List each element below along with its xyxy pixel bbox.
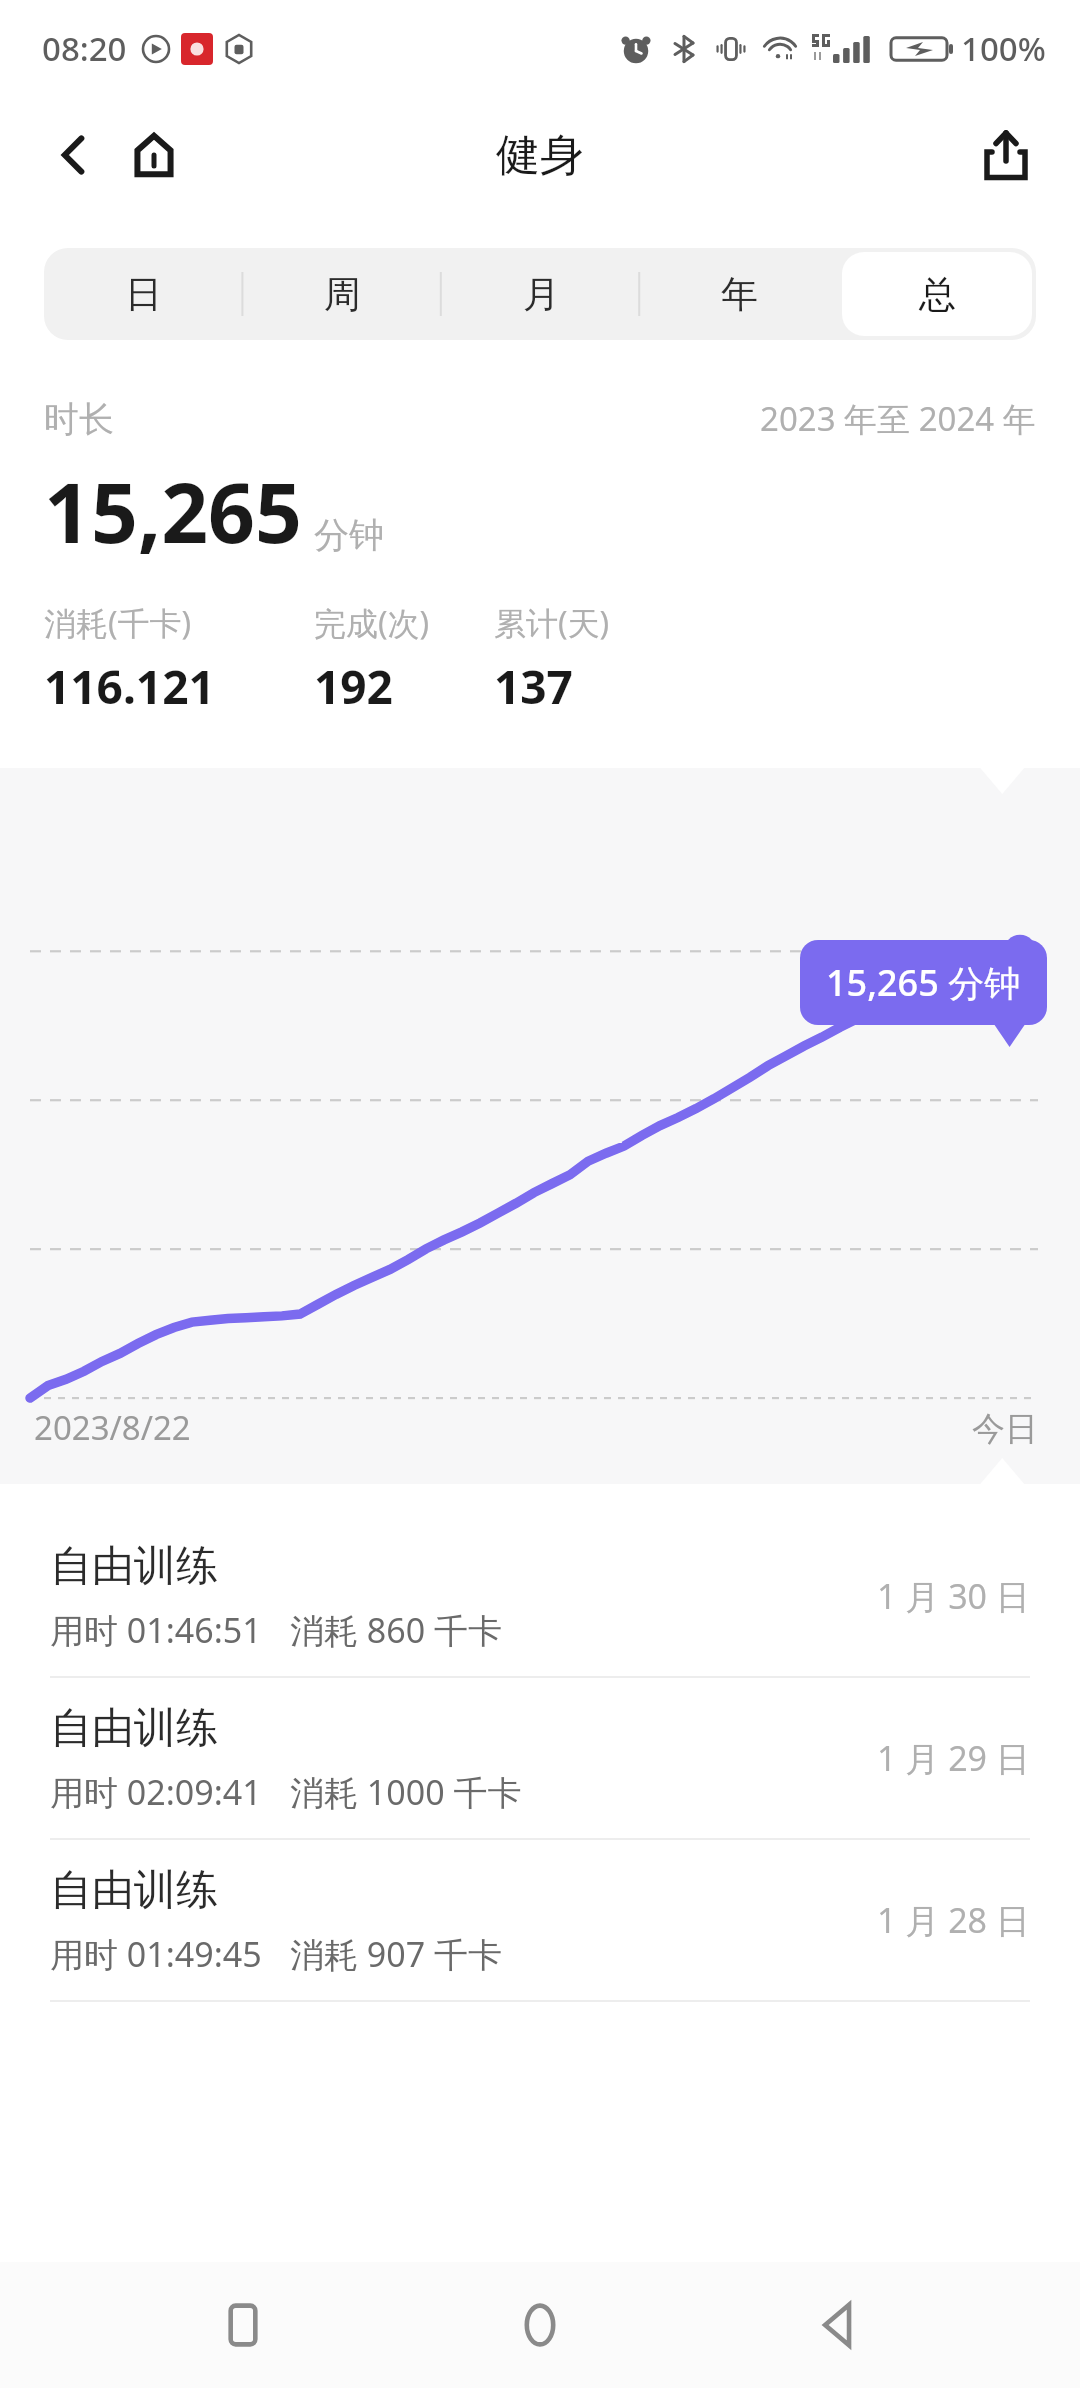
staticText: 116.121 bbox=[44, 655, 215, 718]
staticText: 消耗(千卡) bbox=[44, 601, 192, 645]
staticText: 总 bbox=[919, 271, 956, 318]
staticText: 1 月 29 日 bbox=[877, 1735, 1030, 1781]
staticText: 1 月 30 日 bbox=[877, 1573, 1030, 1619]
staticText: 自由训练 bbox=[50, 1702, 218, 1755]
staticText: 日 bbox=[125, 271, 162, 318]
staticText: 时长 bbox=[44, 397, 114, 441]
staticText: 消耗 1000 千卡 bbox=[290, 1769, 522, 1815]
staticText: 健身 bbox=[496, 128, 584, 183]
button[interactable]: 自由训练 bbox=[0, 1516, 1080, 1676]
button[interactable]: 自由训练 bbox=[0, 1840, 1080, 2000]
button[interactable]: Home bbox=[114, 115, 194, 195]
staticText: 2023 年至 2024 年 bbox=[760, 396, 1036, 441]
staticText: 分钟 bbox=[314, 513, 384, 557]
button[interactable]: Back bbox=[783, 2270, 893, 2380]
staticText: 今日 bbox=[972, 1408, 1038, 1450]
staticText: 08:20 bbox=[42, 26, 127, 71]
staticText: 用时 01:46:51 bbox=[50, 1607, 262, 1653]
staticText: 自由训练 bbox=[50, 1540, 218, 1593]
staticText: 15,265 分钟 bbox=[826, 958, 1021, 1007]
staticText: 192 bbox=[314, 655, 393, 718]
button[interactable]: Recents bbox=[188, 2270, 298, 2380]
button[interactable]: Back bbox=[34, 115, 114, 195]
button[interactable]: 日 bbox=[44, 248, 243, 340]
staticText: 月 bbox=[523, 271, 560, 318]
staticText: 2023/8/22 bbox=[34, 1405, 191, 1450]
staticText: 15,265 bbox=[44, 455, 302, 567]
staticText: 累计(天) bbox=[494, 601, 610, 645]
staticText: 100% bbox=[961, 26, 1046, 71]
staticText: 消耗 907 千卡 bbox=[290, 1931, 503, 1977]
button[interactable]: 自由训练 bbox=[0, 1678, 1080, 1838]
staticText: 1 月 28 日 bbox=[877, 1897, 1030, 1943]
staticText: 自由训练 bbox=[50, 1864, 218, 1917]
button[interactable]: 周 bbox=[243, 248, 442, 340]
button[interactable]: Home bbox=[485, 2270, 595, 2380]
button[interactable]: 总 bbox=[842, 252, 1032, 336]
staticText: 137 bbox=[494, 655, 573, 718]
staticText: 年 bbox=[721, 271, 758, 318]
button[interactable]: 月 bbox=[442, 248, 640, 340]
staticText: 消耗 860 千卡 bbox=[290, 1607, 503, 1653]
button[interactable]: 年 bbox=[640, 248, 838, 340]
staticText: 周 bbox=[324, 271, 361, 318]
staticText: 用时 02:09:41 bbox=[50, 1769, 262, 1815]
staticText: 完成(次) bbox=[314, 601, 430, 645]
button[interactable]: Share bbox=[964, 113, 1048, 197]
staticText: 用时 01:49:45 bbox=[50, 1931, 262, 1977]
